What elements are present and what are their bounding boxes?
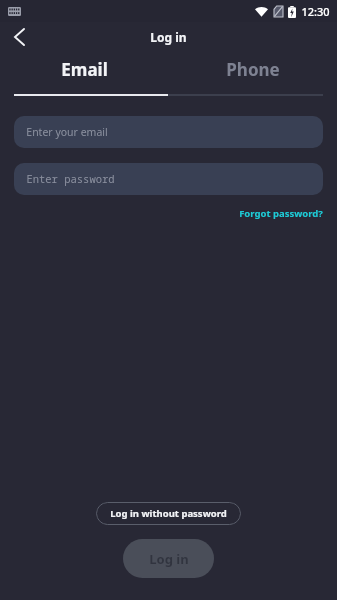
- staticText: Log in without password: [110, 507, 227, 520]
- button[interactable]: Back: [4, 22, 34, 52]
- staticText: Phone: [226, 58, 280, 81]
- button[interactable]: Forgot password?: [239, 207, 323, 220]
- staticText: 12:30: [301, 4, 330, 19]
- button[interactable]: Email: [0, 52, 168, 86]
- staticText: Enter your email: [26, 125, 108, 139]
- button[interactable]: Enter your email: [14, 116, 323, 148]
- staticText: Enter password: [26, 172, 115, 186]
- staticText: Log in: [149, 550, 189, 568]
- staticText: Email: [61, 58, 108, 81]
- button[interactable]: Log in: [123, 539, 214, 578]
- button[interactable]: Phone: [168, 52, 337, 86]
- button[interactable]: Log in without password: [96, 502, 241, 525]
- button[interactable]: Enter password: [14, 163, 323, 195]
- staticText: Log in: [150, 29, 187, 45]
- staticText: Forgot password?: [239, 207, 323, 220]
